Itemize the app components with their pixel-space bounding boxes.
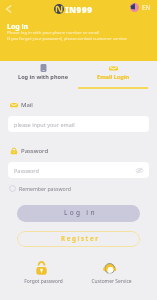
staticText: Forgot password [24,278,63,285]
staticText: Log in with phone [18,73,68,81]
staticText: Log in [7,22,29,32]
staticText: Password [21,147,49,155]
button[interactable]: Email Login [78,61,148,89]
staticText: Password [14,167,39,174]
staticText: Email Login [97,73,130,81]
staticText: EN [142,3,151,12]
staticText: Please log in with your phone number or … [7,30,127,41]
staticText: Customer Service [91,278,132,285]
staticText: Register [61,234,100,242]
staticText: Remember password [19,185,71,192]
button[interactable]: Customer Service [91,261,132,285]
button[interactable]: Password [8,162,149,178]
button[interactable]: Log in with phone [8,61,78,87]
button[interactable]: Log in [17,205,140,222]
staticText: please input your email [14,121,75,128]
staticText: Mail [21,101,33,109]
staticText: IN999 [65,4,93,15]
button[interactable]: please input your email [8,116,149,132]
button[interactable]: Back [0,1,16,17]
button[interactable]: Remember password [9,185,71,192]
button[interactable]: Forgot password [24,261,63,285]
button[interactable]: Register [17,231,140,247]
button[interactable]: Language EN [130,3,151,12]
other: Show password [136,167,143,174]
staticText: Log in [64,208,97,217]
